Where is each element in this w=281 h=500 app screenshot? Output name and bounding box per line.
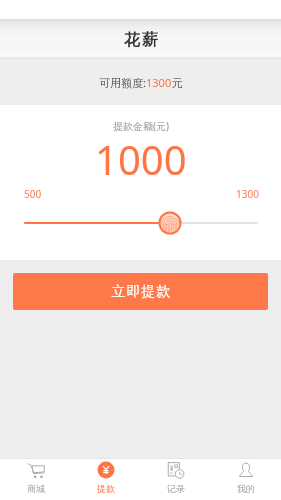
staticText: 商城: [27, 483, 45, 494]
button[interactable]: 我的: [211, 458, 281, 496]
staticText: 可用额度:: [99, 75, 146, 90]
button[interactable]: 立即提款: [13, 273, 268, 310]
staticText: 500: [24, 187, 42, 201]
staticText: 花薪: [123, 30, 159, 50]
staticText: 我的: [237, 483, 255, 494]
staticText: 提款金额(元): [113, 119, 169, 133]
button[interactable]: 提款金额滑块: [0, 210, 281, 236]
staticText: 元: [172, 76, 183, 90]
staticText: 1000: [95, 132, 187, 186]
staticText: 提款: [97, 483, 115, 494]
staticText: 1300: [146, 75, 172, 90]
button[interactable]: 提款: [71, 458, 141, 496]
staticText: 1300: [236, 187, 259, 201]
staticText: 记录: [167, 483, 185, 494]
button[interactable]: 商城: [0, 458, 71, 496]
button[interactable]: 记录: [141, 458, 211, 496]
staticText: 立即提款: [111, 283, 171, 301]
